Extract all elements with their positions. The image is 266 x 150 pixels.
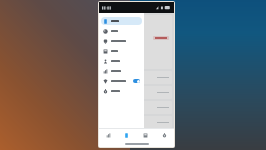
button[interactable] xyxy=(153,36,169,40)
button[interactable] xyxy=(101,17,142,25)
button[interactable]: Devices xyxy=(117,129,136,141)
button[interactable] xyxy=(101,101,172,114)
button[interactable] xyxy=(101,87,142,95)
button[interactable] xyxy=(101,86,172,99)
button[interactable] xyxy=(101,71,172,84)
button[interactable]: Profile xyxy=(155,129,174,141)
button[interactable] xyxy=(101,57,142,65)
button[interactable]: Toggle accessibility xyxy=(133,79,140,83)
button[interactable] xyxy=(101,27,142,35)
button[interactable] xyxy=(101,67,142,75)
button[interactable]: Library xyxy=(136,129,155,141)
button[interactable] xyxy=(101,47,142,55)
button[interactable]: Home xyxy=(99,129,117,141)
button[interactable] xyxy=(101,116,172,128)
button[interactable] xyxy=(101,37,142,45)
button[interactable]: Toggle accessibility xyxy=(101,77,142,85)
